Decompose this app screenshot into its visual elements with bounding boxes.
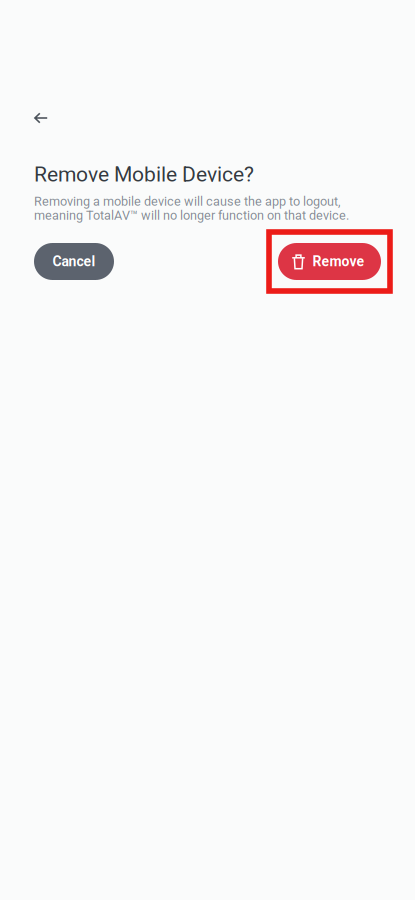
button[interactable]: Back <box>22 101 60 135</box>
staticText: Cancel <box>52 253 95 270</box>
button[interactable]: Cancel <box>34 243 114 280</box>
staticText: Remove Mobile Device? <box>34 162 254 187</box>
staticText: Removing a mobile device will cause the … <box>34 194 340 209</box>
button[interactable]: Remove <box>269 232 390 291</box>
staticText: meaning TotalAV™ will no longer function… <box>34 208 349 223</box>
staticText: Remove <box>312 253 364 270</box>
